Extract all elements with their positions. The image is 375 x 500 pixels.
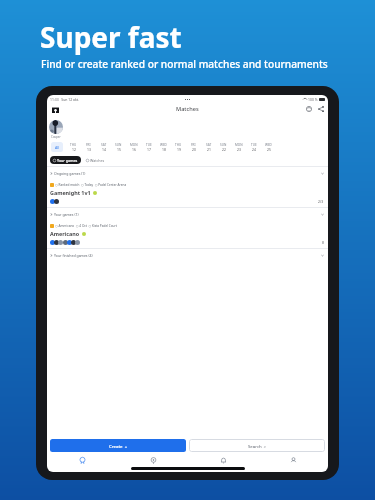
button[interactable]: Share — [315, 104, 326, 114]
staticText: Find or create ranked or normal matches … — [41, 57, 328, 71]
button[interactable]: WED — [261, 141, 276, 153]
staticText: TUE — [251, 143, 257, 147]
button[interactable]: SUN — [111, 141, 126, 153]
button[interactable]: THU — [66, 141, 81, 153]
staticText: FRI — [191, 143, 196, 147]
button[interactable]: ○ Americano ○ 4 Oct ○ Kista Padel Court — [47, 221, 328, 248]
staticText: Super fast — [40, 18, 182, 56]
staticText: SAT — [206, 143, 212, 147]
staticText: 11:33 Sun 12 okt. — [50, 97, 79, 102]
button[interactable]: WED — [156, 141, 171, 153]
button[interactable]: All — [51, 142, 63, 152]
button[interactable]: FRI — [186, 141, 201, 153]
button[interactable]: Create + — [50, 439, 186, 452]
button[interactable]: Profile — [258, 452, 328, 466]
staticText: THU — [70, 143, 77, 147]
staticText: 20 — [192, 147, 196, 152]
staticText: 8 — [322, 240, 324, 245]
staticText: SAT — [101, 143, 107, 147]
staticText: TUE — [146, 143, 152, 147]
staticText: FRI — [86, 143, 91, 147]
staticText: WED — [160, 143, 167, 147]
staticText: Casper — [51, 135, 61, 139]
staticText: Your finished games (4) — [54, 253, 93, 258]
staticText: SUN — [220, 143, 227, 147]
button[interactable]: ○ Ranked match ○ Today ○ Padel Center Ar… — [47, 180, 328, 207]
staticText: SUN — [115, 143, 122, 147]
button[interactable]: Your games (1) — [50, 208, 324, 221]
button[interactable]: SUN — [216, 141, 231, 153]
staticText: Matches — [176, 105, 199, 113]
staticText: Search ⌕ — [248, 443, 267, 449]
staticText: 100 % — [308, 97, 318, 102]
staticText: All — [55, 145, 60, 150]
staticText: THU — [175, 143, 182, 147]
button[interactable]: MON — [126, 141, 141, 153]
staticText: Your games — [57, 158, 78, 163]
staticText: 25 — [267, 147, 271, 152]
button[interactable]: Help — [303, 104, 314, 114]
button[interactable]: TUE — [246, 141, 261, 153]
staticText: ○ Americano ○ 4 Oct ○ Kista Padel Court — [55, 224, 117, 228]
button[interactable]: SAT — [201, 141, 216, 153]
button[interactable]: Matches — [118, 452, 188, 466]
staticText: 22 — [222, 147, 226, 152]
staticText: Your games (1) — [54, 212, 79, 217]
staticText: Americano — [50, 230, 80, 237]
button[interactable]: SAT — [96, 141, 111, 153]
staticText: Gamenight 1v1 — [50, 189, 91, 196]
staticText: MON — [130, 143, 138, 147]
button[interactable]: FRI — [81, 141, 96, 153]
staticText: 15 — [117, 147, 121, 152]
staticText: 12 — [72, 147, 76, 152]
button[interactable]: Watches — [86, 156, 105, 164]
staticText: 16 — [132, 147, 136, 152]
staticText: 24 — [252, 147, 256, 152]
button[interactable]: Leaderboard — [47, 452, 118, 466]
staticText: ○ Ranked match ○ Today ○ Padel Center Ar… — [55, 183, 127, 187]
staticText: 23 — [237, 147, 241, 152]
button[interactable]: Your games — [50, 156, 81, 164]
staticText: Watches — [90, 158, 105, 163]
staticText: 17 — [147, 147, 151, 152]
staticText: 2/3 — [318, 199, 324, 204]
button[interactable]: Your finished games (4) — [50, 249, 324, 262]
staticText: Ongoing games (1) — [54, 171, 86, 176]
button[interactable]: MON — [231, 141, 246, 153]
staticText: WED — [265, 143, 272, 147]
staticText: MON — [235, 143, 243, 147]
button[interactable]: Search ⌕ — [189, 439, 325, 452]
button[interactable]: App logo — [49, 104, 61, 114]
staticText: Create + — [109, 443, 128, 449]
button[interactable]: Profile photo — [49, 120, 63, 134]
staticText: 19 — [177, 147, 181, 152]
staticText: 21 — [207, 147, 211, 152]
staticText: 18 — [162, 147, 166, 152]
button[interactable]: THU — [171, 141, 186, 153]
staticText: 13 — [87, 147, 91, 152]
button[interactable]: Notifications — [188, 452, 258, 466]
staticText: 14 — [102, 147, 106, 152]
button[interactable]: TUE — [141, 141, 156, 153]
button[interactable]: Ongoing games (1) — [50, 167, 324, 180]
